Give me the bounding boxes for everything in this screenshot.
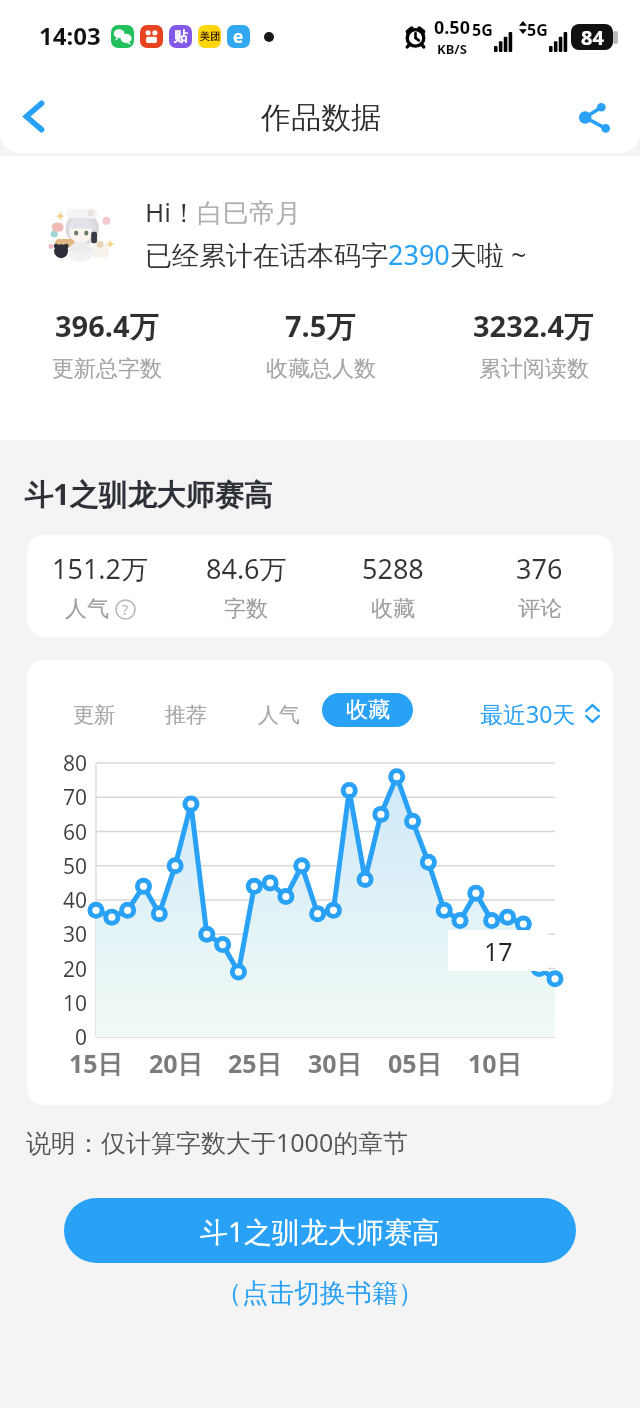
staticText: KB/S <box>437 40 467 58</box>
staticText: 白巳帝月 <box>197 197 301 230</box>
staticText: 说明：仅计算字数大于1000的章节 <box>26 1125 409 1159</box>
staticText: 7.5万 <box>285 306 356 346</box>
staticText: 17 <box>484 934 513 968</box>
button[interactable]: Back <box>5 87 63 145</box>
staticText: 14:03 <box>39 19 101 52</box>
staticText: 50 <box>63 852 88 881</box>
staticText: 0.50 <box>434 15 470 40</box>
staticText: 376 <box>516 550 563 587</box>
button[interactable]: 收藏 <box>322 693 413 727</box>
staticText: 贴 <box>174 28 188 46</box>
staticText: 60 <box>63 818 88 847</box>
staticText: 10日 <box>468 1046 522 1080</box>
staticText: 30 <box>63 920 88 949</box>
button[interactable]: 最近30天 <box>480 698 600 729</box>
staticText: 斗1之驯龙大师赛高 <box>24 474 273 514</box>
staticText: 15日 <box>69 1046 123 1080</box>
button[interactable]: 更新 <box>73 697 115 733</box>
staticText: e <box>233 25 244 48</box>
staticText: 收藏总人数 <box>266 355 376 383</box>
staticText: 斗1之驯龙大师赛高 <box>200 1212 441 1250</box>
staticText: 20日 <box>149 1046 203 1080</box>
staticText: 40 <box>63 886 88 915</box>
staticText: 10 <box>63 989 88 1018</box>
staticText: 收藏 <box>371 595 415 623</box>
staticText: 5G <box>527 19 548 41</box>
staticText: 更新 <box>73 702 115 728</box>
staticText: 人气 <box>258 702 300 728</box>
staticText: 5G <box>472 19 493 41</box>
staticText: 0 <box>75 1023 88 1052</box>
staticText: 30日 <box>308 1046 362 1080</box>
staticText: 已经累计在话本码字 <box>145 239 388 273</box>
staticText: 20 <box>63 955 88 984</box>
staticText: 推荐 <box>165 702 207 728</box>
button[interactable]: 推荐 <box>165 697 207 733</box>
staticText: 05日 <box>388 1046 442 1080</box>
staticText: 更新总字数 <box>52 355 162 383</box>
staticText: 80 <box>63 749 88 778</box>
staticText: 3232.4万 <box>473 306 594 346</box>
staticText: 天啦 ~ <box>450 236 527 273</box>
staticText: 70 <box>63 783 88 812</box>
staticText: 2390 <box>388 236 450 273</box>
button[interactable]: （点击切换书籍） <box>216 1277 424 1310</box>
staticText: Hi！ <box>145 194 197 230</box>
staticText: 25日 <box>228 1046 282 1080</box>
staticText: 5288 <box>362 550 424 587</box>
staticText: 累计阅读数 <box>479 355 589 383</box>
staticText: 美团 <box>200 30 220 43</box>
staticText: 收藏 <box>346 696 390 724</box>
staticText: 字数 <box>224 595 268 623</box>
button[interactable]: Share <box>565 88 623 146</box>
button[interactable]: 斗1之驯龙大师赛高 <box>64 1198 576 1263</box>
button[interactable]: 人气 <box>258 697 300 733</box>
staticText: 评论 <box>518 595 562 623</box>
staticText: 作品数据 <box>261 99 381 137</box>
staticText: 最近30天 <box>480 698 576 729</box>
staticText: 人气 <box>65 595 109 623</box>
staticText: 84 <box>581 24 604 50</box>
staticText: 84.6万 <box>206 550 287 587</box>
staticText: 396.4万 <box>55 306 159 346</box>
staticText: 151.2万 <box>52 550 149 587</box>
staticText: ? <box>122 600 129 619</box>
